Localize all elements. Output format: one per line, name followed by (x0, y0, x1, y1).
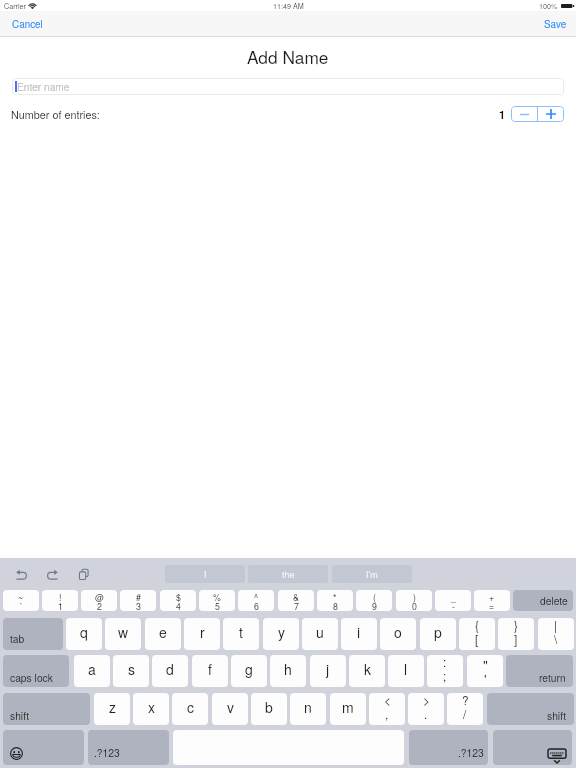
button[interactable]: h (270, 655, 306, 687)
button[interactable]: * (317, 590, 353, 611)
staticText: 100% (539, 1, 558, 11)
button[interactable]: p (420, 618, 456, 650)
staticText: 8 (333, 600, 338, 611)
button[interactable]: & (278, 590, 314, 611)
button[interactable]: u (302, 618, 338, 650)
button[interactable]: o (380, 618, 416, 650)
button[interactable]: n (290, 693, 326, 725)
button[interactable]: m (330, 693, 366, 725)
button[interactable]: @ (81, 590, 117, 611)
button[interactable]: q (66, 618, 102, 650)
button[interactable]: g (231, 655, 267, 687)
button[interactable]: # (120, 590, 156, 611)
button[interactable]: Redo (42, 564, 63, 584)
button[interactable]: i (341, 618, 377, 650)
button[interactable]: x (133, 693, 169, 725)
button[interactable]: Undo (11, 564, 32, 584)
button[interactable]: .?123 (88, 730, 169, 765)
button[interactable]: j (310, 655, 346, 687)
button[interactable]: s (113, 655, 149, 687)
button[interactable]: tab (3, 618, 63, 650)
button[interactable]: shift (487, 693, 574, 725)
button[interactable]: { (459, 618, 495, 650)
button[interactable]: Decrease (511, 106, 537, 122)
button[interactable]: | (538, 618, 574, 650)
staticText: h (284, 659, 292, 679)
staticText: e (159, 622, 167, 642)
staticText: 3 (136, 600, 141, 611)
staticText: p (434, 622, 442, 642)
staticText: ! (59, 591, 62, 604)
button[interactable]: + (474, 590, 510, 611)
staticText: 6 (254, 600, 259, 611)
staticText: Add Name (247, 44, 329, 69)
button[interactable]: w (105, 618, 141, 650)
button[interactable]: " (467, 655, 503, 687)
button[interactable]: > (408, 693, 444, 725)
button[interactable]: y (263, 618, 299, 650)
staticText: [ (475, 630, 479, 647)
button[interactable]: f (192, 655, 228, 687)
button[interactable]: delete (513, 590, 573, 611)
staticText: ? (462, 693, 469, 708)
staticText: = (489, 600, 495, 611)
button[interactable]: Paste (73, 564, 94, 584)
button[interactable]: Enter name (12, 78, 564, 95)
button[interactable]: I (165, 565, 245, 583)
button[interactable]: c (172, 693, 208, 725)
button[interactable]: ^ (238, 590, 274, 611)
button[interactable]: Hide keyboard (493, 730, 572, 765)
button[interactable]: return (506, 655, 573, 687)
button[interactable]: < (369, 693, 405, 725)
staticText: m (342, 697, 354, 717)
staticText: j (326, 659, 330, 679)
button[interactable]: d (152, 655, 188, 687)
button[interactable]: ! (42, 590, 78, 611)
button[interactable]: % (199, 590, 235, 611)
button[interactable]: Cancel (2, 11, 53, 37)
staticText: > (423, 693, 430, 708)
button[interactable]: Increase (538, 106, 564, 122)
staticText: b (265, 697, 273, 717)
staticText: ^ (254, 591, 259, 604)
staticText: Save (544, 17, 567, 31)
button[interactable]: caps lock (3, 655, 69, 687)
staticText: ] (514, 630, 518, 647)
button[interactable]: t (223, 618, 259, 650)
button[interactable]: _ (435, 590, 471, 611)
staticText: the (282, 568, 295, 581)
button[interactable]: $ (160, 590, 196, 611)
staticText: + (489, 591, 495, 604)
button[interactable]: : (427, 655, 463, 687)
staticText: " (483, 656, 488, 675)
button[interactable]: k (349, 655, 385, 687)
staticText: shift (10, 708, 30, 723)
staticText: tab (10, 631, 25, 646)
button[interactable]: } (498, 618, 534, 650)
button[interactable]: e (145, 618, 181, 650)
button[interactable]: ( (356, 590, 392, 611)
staticText: caps lock (10, 670, 53, 685)
button[interactable]: r (184, 618, 220, 650)
button[interactable]: l (388, 655, 424, 687)
staticText: < (384, 693, 391, 708)
staticText: r (200, 622, 205, 642)
staticText: s (128, 659, 135, 679)
button[interactable]: z (94, 693, 130, 725)
button[interactable]: ) (396, 590, 432, 611)
button[interactable]: Emoji (3, 730, 84, 765)
button[interactable]: I'm (332, 565, 412, 583)
staticText: * (333, 591, 337, 604)
button[interactable]: b (251, 693, 287, 725)
button[interactable]: a (74, 655, 110, 687)
button[interactable]: shift (3, 693, 90, 725)
button[interactable]: ~ (3, 590, 39, 611)
button[interactable]: .?123 (409, 730, 488, 765)
staticText: 1 (58, 600, 63, 611)
button[interactable]: the (248, 565, 328, 583)
button[interactable]: Save (534, 11, 576, 37)
button[interactable]: v (212, 693, 248, 725)
button[interactable]: ? (447, 693, 483, 725)
staticText: g (245, 659, 253, 679)
